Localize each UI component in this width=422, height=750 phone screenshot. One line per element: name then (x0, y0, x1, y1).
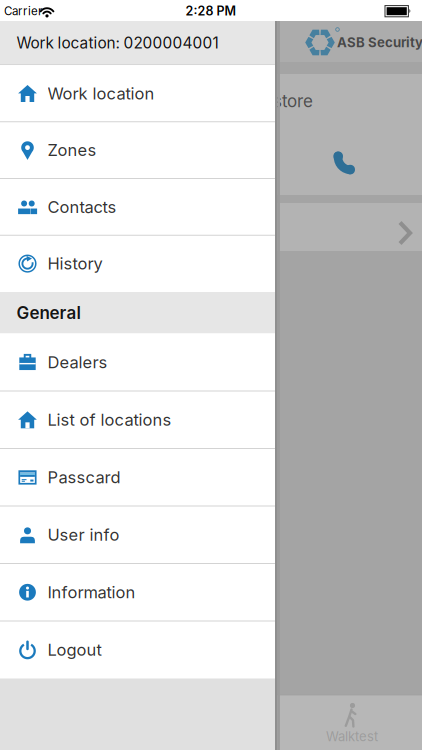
staticText: History (47, 254, 102, 274)
staticText: Work location (47, 83, 154, 103)
button[interactable]: Information (0, 563, 275, 621)
button[interactable]: List of locations (0, 391, 275, 448)
button[interactable]: Work location (0, 65, 275, 122)
button[interactable]: User info (0, 506, 275, 563)
staticText: Carrier (4, 4, 42, 18)
button[interactable]: History (0, 235, 275, 292)
staticText: store (273, 91, 313, 111)
button[interactable]: Contacts (0, 178, 275, 235)
button[interactable]: Walktest (307, 693, 397, 747)
staticText: General (16, 302, 80, 323)
staticText: Walktest (326, 729, 378, 744)
staticText: Contacts (47, 197, 116, 217)
staticText: Zones (47, 140, 96, 160)
button[interactable]: Dealers (0, 333, 275, 391)
button[interactable]: Zones (0, 122, 275, 178)
staticText: List of locations (47, 410, 171, 430)
staticText: Information (47, 582, 135, 602)
staticText: 2:28 PM (185, 3, 236, 18)
staticText: Passcard (47, 467, 120, 487)
staticText: Dealers (47, 352, 107, 372)
staticText: User info (47, 525, 119, 545)
staticText: ASB Security (337, 34, 422, 50)
staticText: Work location: 0200004001 (16, 34, 218, 52)
staticText: Logout (47, 640, 101, 660)
button[interactable]: Call (329, 138, 373, 182)
button[interactable]: Logout (0, 621, 275, 678)
button[interactable]: Passcard (0, 448, 275, 506)
